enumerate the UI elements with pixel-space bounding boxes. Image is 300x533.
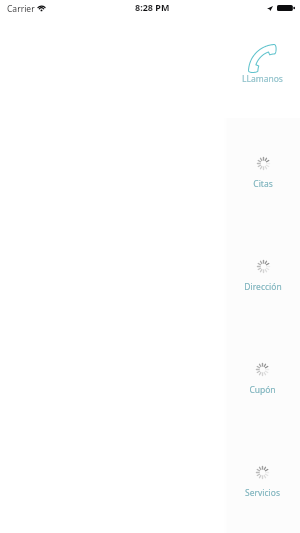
staticText: Dirección xyxy=(244,281,282,293)
staticText: Carrier xyxy=(7,3,35,15)
button[interactable]: Cupón xyxy=(225,350,300,396)
staticText: Citas xyxy=(253,178,273,190)
button[interactable]: Servicios xyxy=(225,453,300,499)
staticText: Cupón xyxy=(249,384,276,396)
button[interactable]: Dirección xyxy=(225,247,300,293)
button[interactable]: Citas xyxy=(225,144,300,190)
other: Location xyxy=(267,6,273,11)
staticText: Servicios xyxy=(245,487,280,499)
staticText: LLamanos xyxy=(242,73,283,85)
other: Llamanos xyxy=(248,44,277,73)
button[interactable]: Llamanos xyxy=(225,36,300,88)
staticText: 8:28 PM xyxy=(135,1,170,13)
